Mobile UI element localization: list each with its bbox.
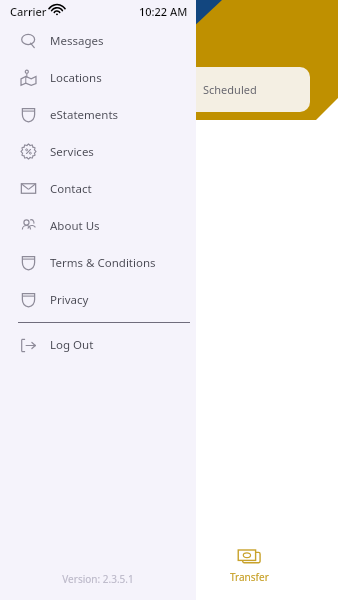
button[interactable]: Messages	[0, 22, 196, 59]
staticText: 10:22 AM	[139, 4, 188, 19]
button[interactable]: Services	[0, 133, 196, 170]
button[interactable]: About Us	[0, 207, 196, 244]
staticText: Messages	[50, 33, 104, 49]
staticText: Log Out	[50, 337, 94, 353]
staticText: Terms & Conditions	[50, 255, 156, 271]
staticText: Contact	[50, 181, 92, 197]
staticText: eStatements	[50, 107, 119, 123]
button[interactable]: Privacy	[0, 281, 196, 318]
button[interactable]: Transfer	[212, 548, 286, 594]
staticText: Transfer	[230, 570, 269, 584]
button[interactable]: eStatements	[0, 96, 196, 133]
staticText: Privacy	[50, 292, 89, 308]
staticText: About Us	[50, 218, 100, 234]
staticText: Services	[50, 144, 94, 160]
button[interactable]: Terms & Conditions	[0, 244, 196, 281]
staticText: Carrier	[10, 4, 47, 19]
button[interactable]: Contact	[0, 170, 196, 207]
staticText: Scheduled	[203, 82, 257, 97]
button[interactable]: Scheduled	[150, 67, 310, 112]
staticText: Version: 2.3.5.1	[62, 572, 134, 586]
button[interactable]: Locations	[0, 59, 196, 96]
button[interactable]: Log Out	[0, 328, 196, 362]
staticText: Locations	[50, 70, 102, 86]
